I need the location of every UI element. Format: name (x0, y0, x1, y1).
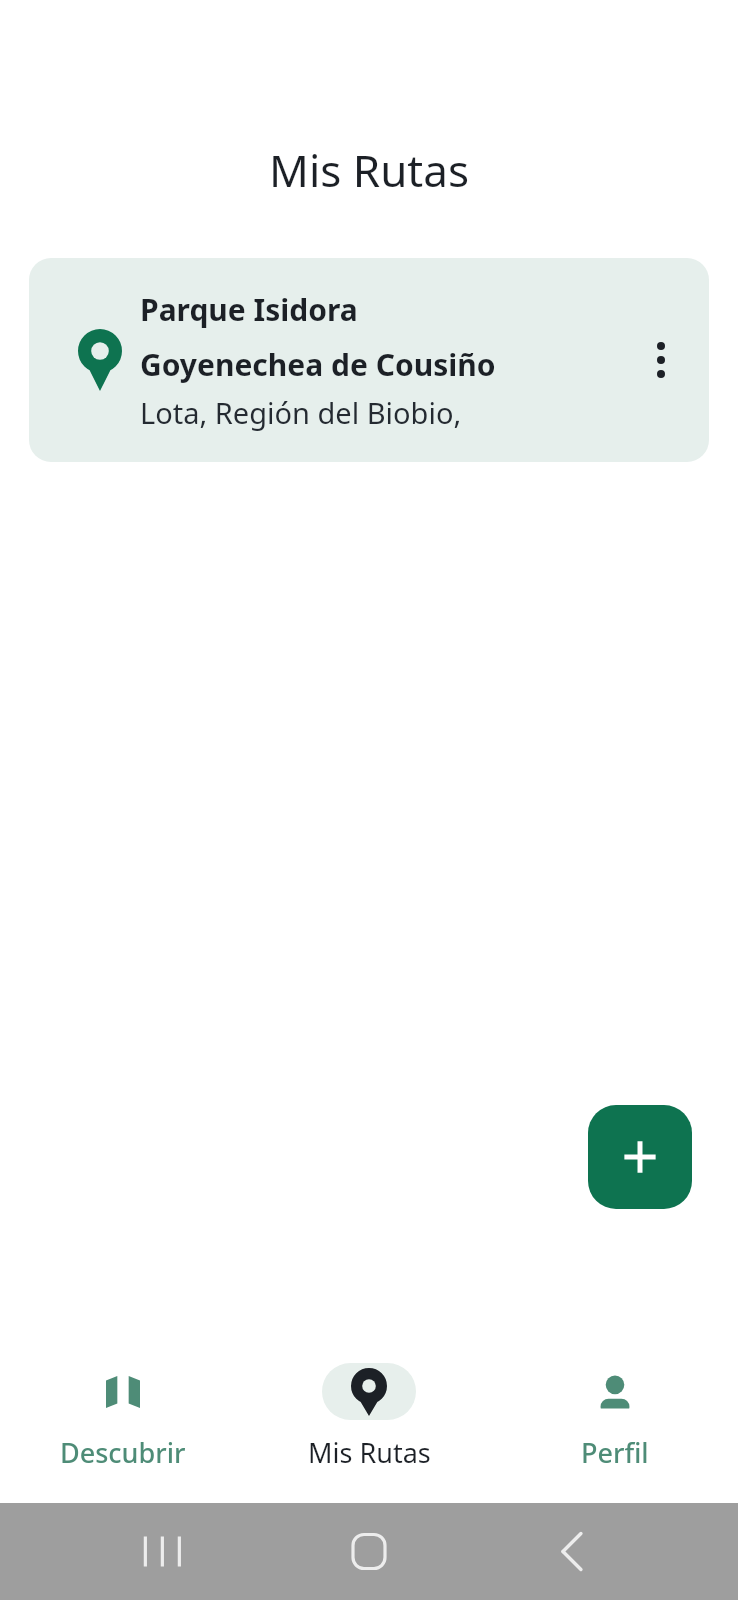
button[interactable]: Parque Isidora (29, 258, 709, 462)
staticText: Mis Rutas (269, 140, 469, 200)
staticText: Descubrir (60, 1434, 186, 1471)
staticText: Lota, Región del Biobio, (140, 393, 462, 432)
button[interactable]: Perfil (492, 1335, 738, 1503)
button[interactable]: Añadir ruta (588, 1105, 692, 1209)
staticText: Parque Isidora (140, 289, 358, 330)
button[interactable]: Mis Rutas (246, 1335, 492, 1503)
staticText: Perfil (581, 1434, 649, 1471)
button[interactable]: Descubrir (0, 1335, 246, 1503)
button[interactable]: Más opciones (625, 324, 697, 396)
staticText: Goyenechea de Cousiño (140, 344, 496, 385)
staticText: Mis Rutas (308, 1434, 431, 1471)
